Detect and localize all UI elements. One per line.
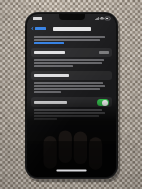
button[interactable]: [31, 48, 112, 57]
button[interactable]: [31, 71, 112, 80]
button[interactable]: [34, 42, 64, 44]
button[interactable]: Optimised battery charging toggle: [97, 99, 109, 106]
button[interactable]: Back: [30, 26, 47, 31]
button[interactable]: Optimised battery charging toggle: [31, 97, 112, 107]
